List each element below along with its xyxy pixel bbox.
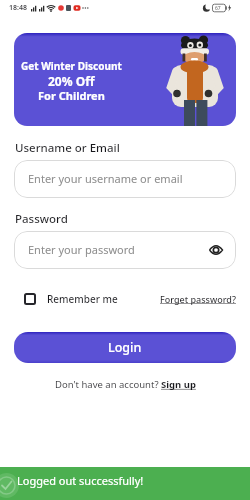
staticText: Password [15,211,68,227]
staticText: Username or Email [15,140,120,156]
button[interactable]: Enter your password [14,231,236,269]
button[interactable]: Login [14,332,236,363]
staticText: 20% Off [48,73,95,89]
staticText: Don't have an account? [55,378,161,391]
button[interactable]: Enter your username or email [14,160,236,198]
staticText: For Children [38,88,105,103]
staticText: Enter your username or email [28,171,183,186]
staticText: Login [108,339,142,356]
button[interactable]: Forget password? [160,293,236,305]
button[interactable]: Sign up [161,378,196,391]
button[interactable]: Get Winter Discount [14,33,236,126]
staticText: Get Winter Discount [21,59,122,73]
staticText: 67 [215,5,221,12]
staticText: Logged out successfully! [17,473,144,488]
staticText: Enter your password [28,242,135,257]
staticText: Remember me [47,292,118,306]
button[interactable]: Remember me [24,291,118,307]
staticText: 18:48 [9,3,27,13]
